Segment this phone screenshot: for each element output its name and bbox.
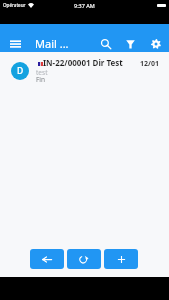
button[interactable]: Back — [30, 249, 64, 269]
staticText: Opérateur — [3, 2, 26, 8]
button[interactable]: Refresh — [67, 249, 101, 269]
button[interactable] — [0, 52, 169, 92]
staticText: Mail ... — [35, 36, 69, 51]
button[interactable]: Add — [104, 249, 138, 269]
staticText: 12/01 — [140, 59, 159, 69]
button[interactable]: Search — [94, 32, 117, 55]
staticText: 9:37 AM — [74, 2, 95, 9]
button[interactable]: Menu — [4, 32, 27, 55]
button[interactable]: Filter — [119, 32, 142, 55]
staticText: D — [17, 65, 24, 77]
button[interactable]: Settings — [144, 32, 167, 55]
staticText: Fin — [36, 75, 46, 84]
staticText: test — [36, 68, 48, 77]
staticText: IN-22/00001 Dir Test — [43, 57, 123, 68]
